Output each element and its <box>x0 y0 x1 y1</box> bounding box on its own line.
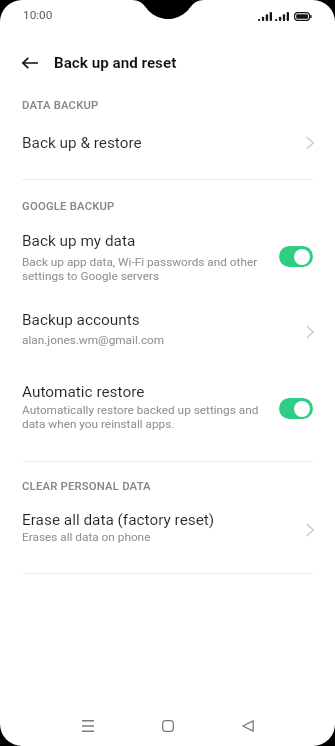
staticText: Automatically restore backed up settings… <box>22 403 267 431</box>
staticText: CLEAR PERSONAL DATA <box>22 480 151 493</box>
button[interactable]: Erase all data (factory reset) <box>0 500 335 556</box>
button[interactable]: Back <box>230 708 265 743</box>
button[interactable]: Backup accounts <box>0 296 335 360</box>
staticText: Automatic restore <box>22 383 145 401</box>
staticText: GOOGLE BACKUP <box>22 200 115 213</box>
button[interactable]: Home <box>150 708 185 743</box>
staticText: Back up app data, Wi-Fi passwords and ot… <box>22 255 267 283</box>
button[interactable]: Back up & restore <box>0 118 335 168</box>
staticText: Erases all data on phone <box>22 530 151 544</box>
staticText: Back up my data <box>22 232 136 250</box>
staticText: 10:00 <box>23 8 53 22</box>
staticText: Back up & restore <box>22 134 142 152</box>
button[interactable]: Toggle, on <box>279 246 313 267</box>
button[interactable]: Toggle, on <box>279 398 313 419</box>
button[interactable]: Automatic restore <box>0 368 335 440</box>
staticText: Erase all data (factory reset) <box>22 511 215 529</box>
button[interactable]: Recent apps <box>70 708 105 743</box>
staticText: Back up and reset <box>54 54 177 72</box>
staticText: alan.jones.wm@gmail.com <box>22 333 165 347</box>
staticText: Backup accounts <box>22 311 140 329</box>
staticText: DATA BACKUP <box>22 99 99 112</box>
button[interactable]: Back up my data <box>0 222 335 292</box>
button[interactable]: Navigate up <box>13 46 46 79</box>
